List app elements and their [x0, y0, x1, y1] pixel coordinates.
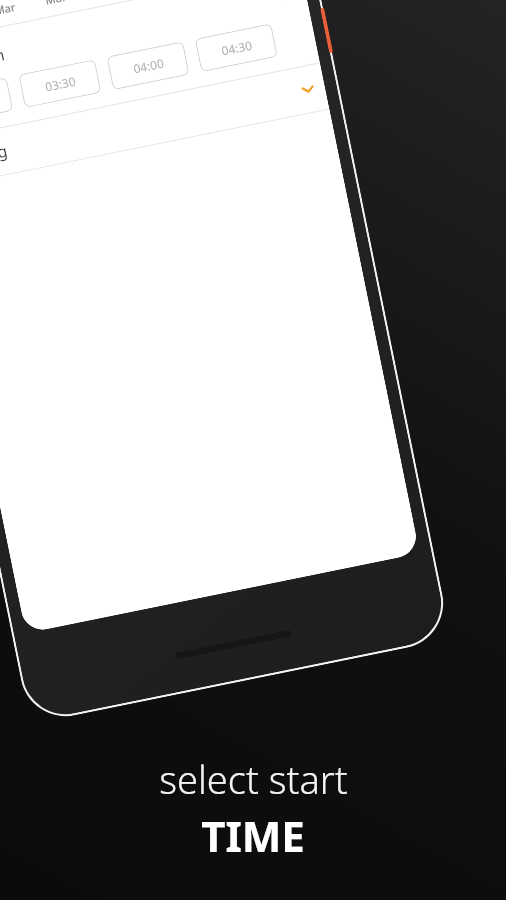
staticText: Afternoon: [0, 43, 7, 80]
button[interactable]: 04:00: [106, 41, 190, 90]
staticText: TIME: [201, 807, 305, 864]
staticText: 03:30: [44, 73, 77, 94]
staticText: select start: [159, 753, 348, 805]
staticText: Mar: [0, 0, 17, 18]
staticText: Mar: [43, 0, 68, 8]
staticText: 04:00: [132, 55, 165, 76]
staticText: 04:30: [220, 37, 254, 59]
button[interactable]: Thu: [0, 0, 34, 30]
button[interactable]: Fri: [19, 0, 84, 20]
button[interactable]: 03:30: [18, 59, 101, 108]
button[interactable]: 03:00: [0, 77, 13, 126]
button[interactable]: Afternoon: [0, 0, 310, 95]
staticText: Evening: [0, 140, 9, 173]
button[interactable]: Evening: [0, 63, 329, 188]
button[interactable]: 04:30: [195, 23, 278, 72]
button[interactable]: Sat: [70, 0, 135, 9]
